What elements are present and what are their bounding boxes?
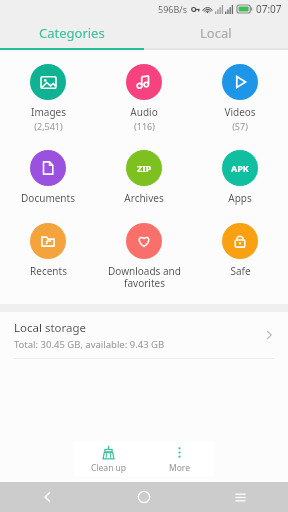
staticText: (57)	[232, 120, 248, 132]
staticText: APK	[231, 162, 249, 174]
staticText: Archives	[124, 191, 164, 205]
staticText: Recents	[30, 264, 67, 278]
button[interactable]: Home	[96, 482, 192, 512]
button[interactable]: Documents	[0, 148, 96, 207]
button[interactable]: Categories	[0, 18, 144, 48]
staticText: Audio	[130, 105, 158, 119]
button[interactable]: Local storage	[0, 312, 288, 358]
staticText: Local	[200, 24, 232, 42]
button[interactable]: Audio	[96, 62, 192, 134]
button[interactable]: More	[144, 442, 215, 477]
button[interactable]: Recents	[0, 221, 96, 280]
button[interactable]: ZIP	[96, 148, 192, 207]
staticText: Images	[31, 105, 66, 119]
button[interactable]: APK	[192, 148, 288, 207]
staticText: 596B/s	[158, 3, 187, 15]
staticText: Safe	[230, 264, 251, 278]
button[interactable]: Downloads and favorites	[96, 221, 192, 292]
staticText: Downloads and favorites	[108, 264, 181, 290]
staticText: (2,541)	[34, 120, 63, 132]
button[interactable]: Local	[144, 18, 288, 48]
staticText: (116)	[134, 120, 155, 132]
staticText: Videos	[224, 105, 256, 119]
button[interactable]: Back	[0, 482, 96, 512]
staticText: Categories	[39, 24, 105, 42]
button[interactable]: Safe	[192, 221, 288, 280]
staticText: 07:07	[256, 2, 282, 16]
button[interactable]: Videos	[192, 62, 288, 134]
staticText: Documents	[21, 191, 75, 205]
staticText: Local storage	[14, 320, 87, 336]
button[interactable]: Images	[0, 62, 96, 134]
staticText: Clean up	[91, 462, 127, 474]
button[interactable]: Clean up	[73, 442, 144, 477]
staticText: More	[169, 462, 190, 474]
staticText: Apps	[228, 191, 252, 205]
staticText: Total: 30.45 GB, available: 9.43 GB	[14, 338, 165, 351]
button[interactable]: Recent apps	[192, 482, 288, 512]
staticText: ZIP	[137, 162, 152, 174]
